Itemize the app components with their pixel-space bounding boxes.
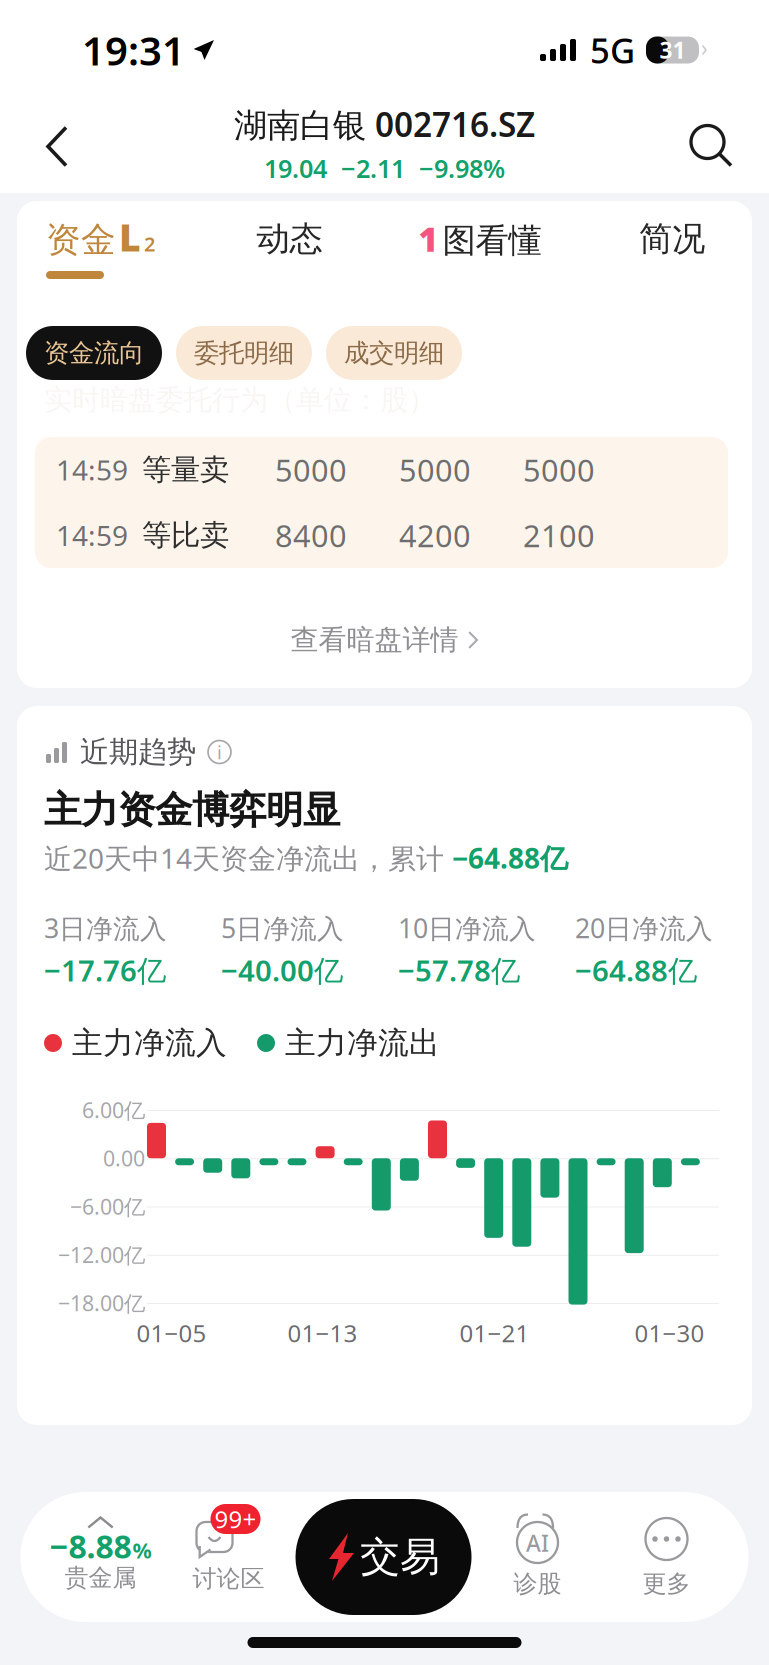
staticText: 5000 [523, 449, 595, 490]
staticText: 成交明细 [344, 337, 444, 368]
staticText: 3日净流入 [44, 910, 167, 946]
button[interactable]: 99+ [180, 1492, 276, 1622]
staticText: L [119, 212, 141, 262]
staticText: 01−30 [634, 1317, 704, 1349]
staticText: 讨论区 [192, 1564, 264, 1593]
staticText: 19.04 [264, 151, 327, 185]
button[interactable]: 委托明细 [176, 326, 312, 380]
staticText: 4200 [399, 515, 471, 556]
button[interactable]: 返回 [12, 100, 102, 193]
staticText: −17.76亿 [44, 950, 166, 989]
staticText: 查看暗盘详情 [290, 623, 458, 657]
staticText: 0.00 [103, 1144, 145, 1172]
staticText: 31 [659, 35, 685, 65]
staticText: 19:31 [82, 23, 185, 76]
staticText: 01−13 [287, 1317, 357, 1349]
staticText: −64.88亿 [452, 839, 568, 877]
staticText: −6.00亿 [70, 1192, 145, 1221]
staticText: −8.88 [49, 1525, 131, 1567]
button[interactable]: 资金流向 [26, 326, 162, 380]
staticText: 资金 [46, 219, 116, 261]
staticText: 诊股 [513, 1569, 561, 1598]
staticText: 14:59 [56, 451, 128, 488]
button[interactable]: AI [490, 1492, 584, 1622]
staticText: −40.00亿 [221, 950, 343, 989]
staticText: 湖南白银 002716.SZ [234, 102, 535, 146]
button[interactable]: 动态 [194, 201, 385, 311]
button[interactable]: 更多 [584, 1492, 748, 1622]
staticText: −9.98% [419, 151, 505, 185]
staticText: 01−05 [136, 1317, 206, 1349]
button[interactable]: 简况 [575, 201, 769, 311]
staticText: 主力净流出 [285, 1024, 440, 1062]
staticText: 10日净流入 [398, 910, 536, 946]
staticText: 主力净流入 [72, 1024, 227, 1062]
button[interactable]: 资金 [17, 201, 194, 311]
staticText: −57.78亿 [398, 950, 520, 989]
staticText: −64.88亿 [575, 950, 697, 989]
staticText: 贵金属 [64, 1563, 136, 1592]
staticText: AI [526, 1528, 549, 1558]
staticText: i [217, 740, 222, 764]
staticText: 20日净流入 [575, 910, 713, 946]
button[interactable]: 1 [385, 201, 575, 311]
button[interactable]: 成交明细 [326, 326, 462, 380]
staticText: 实时暗盘委托行为（单位：股） [44, 383, 436, 417]
staticText: −18.00亿 [58, 1289, 145, 1317]
staticText: −2.11 [341, 151, 405, 185]
staticText: 图看懂 [442, 220, 541, 261]
staticText: 2 [144, 230, 155, 257]
button[interactable]: −8.88 [20, 1492, 180, 1622]
staticText: 简况 [639, 218, 705, 259]
button[interactable]: 搜索 [667, 100, 757, 193]
staticText: 5000 [275, 449, 347, 490]
staticText: 交易 [360, 1532, 440, 1581]
staticText: 委托明细 [194, 337, 294, 368]
staticText: 8400 [275, 515, 347, 556]
staticText: 99+ [214, 1503, 256, 1535]
staticText: 等量卖 [142, 452, 229, 488]
staticText: −12.00亿 [58, 1241, 145, 1269]
staticText: 5G [590, 27, 635, 73]
staticText: 主力资金博弈明显 [44, 787, 340, 833]
staticText: 等比卖 [142, 517, 229, 553]
staticText: 更多 [642, 1569, 690, 1598]
staticText: 2100 [523, 515, 595, 556]
staticText: 5000 [399, 449, 471, 490]
staticText: 资金流向 [44, 337, 144, 368]
staticText: 14:59 [56, 517, 128, 554]
staticText: 近20天中14天资金净流出，累计 [44, 839, 452, 877]
button[interactable]: 交易 [276, 1492, 490, 1622]
button[interactable]: 查看暗盘详情 [17, 592, 752, 688]
staticText: 近期趋势 [80, 734, 196, 770]
staticText: 动态 [256, 218, 322, 259]
staticText: % [132, 1536, 151, 1564]
staticText: 6.00亿 [82, 1096, 145, 1124]
staticText: 01−21 [459, 1317, 529, 1349]
staticText: 1 [418, 217, 438, 261]
staticText: 5日净流入 [221, 910, 344, 946]
